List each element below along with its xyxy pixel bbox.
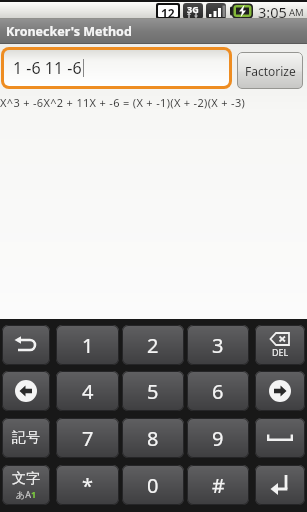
staticText: 3 (212, 332, 224, 359)
staticText: 5 (147, 378, 159, 405)
staticText: 3G (187, 3, 199, 15)
button[interactable] (2, 371, 50, 411)
staticText: 8 (147, 425, 159, 452)
staticText: 0 (147, 472, 159, 499)
button[interactable]: 文字 (2, 465, 50, 505)
staticText: Kronecker's Method (6, 23, 132, 40)
staticText: 12 (161, 5, 175, 17)
button[interactable]: 6 (187, 371, 249, 411)
staticText: 1 (31, 488, 37, 500)
button[interactable]: * (56, 465, 119, 505)
staticText: Factorize (245, 63, 296, 79)
staticText: 4 (82, 378, 94, 405)
button[interactable] (2, 325, 50, 365)
staticText: 6 (212, 378, 224, 405)
button[interactable]: 7 (56, 418, 119, 458)
staticText: DEL (272, 346, 289, 358)
button[interactable]: 9 (187, 418, 249, 458)
button[interactable]: 4 (56, 371, 119, 411)
button[interactable]: 3 (187, 325, 249, 365)
button[interactable]: 0 (122, 465, 184, 505)
button[interactable] (255, 418, 305, 458)
staticText: 記号 (12, 429, 40, 447)
staticText: 2 (147, 332, 159, 359)
staticText: 1 (82, 332, 94, 359)
button[interactable]: Factorize (237, 52, 303, 89)
staticText: * (82, 472, 94, 499)
button[interactable]: 記号 (2, 418, 50, 458)
button[interactable]: 2 (122, 325, 184, 365)
staticText: 7 (82, 425, 94, 452)
button[interactable]: 1 (56, 325, 119, 365)
button[interactable]: 1 -6 11 -6 (1, 47, 232, 89)
staticText: 9 (212, 425, 224, 452)
staticText: 1 -6 11 -6 (13, 57, 82, 79)
button[interactable]: DEL (255, 325, 305, 365)
staticText: AM (289, 6, 304, 19)
button[interactable]: 5 (122, 371, 184, 411)
staticText: X^3 + -6X^2 + 11X + -6 = (X + -1)(X + -2… (0, 95, 246, 110)
button[interactable] (255, 371, 305, 411)
staticText: # (212, 472, 225, 499)
button[interactable]: # (187, 465, 249, 505)
staticText: 3:05 (258, 2, 287, 19)
button[interactable] (255, 465, 305, 505)
button[interactable]: 8 (122, 418, 184, 458)
staticText: あA (16, 488, 31, 500)
staticText: 文字 (12, 470, 40, 488)
